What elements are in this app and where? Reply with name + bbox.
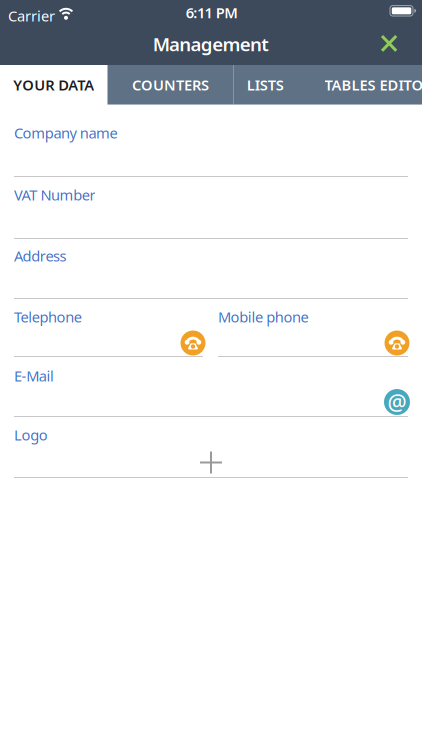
staticText: Mobile phone: [218, 307, 309, 326]
button[interactable]: Call telephone: [180, 330, 205, 355]
staticText: Management: [153, 32, 269, 56]
staticText: Logo: [14, 425, 48, 444]
staticText: Address: [14, 246, 67, 265]
button[interactable]: TABLES EDITOR: [297, 65, 422, 104]
button[interactable]: YOUR DATA: [0, 65, 107, 104]
staticText: VAT Number: [14, 185, 95, 204]
button[interactable]: Add logo: [196, 447, 226, 477]
staticText: @: [387, 388, 406, 416]
button[interactable]: Send e-mail: [384, 389, 410, 415]
staticText: LISTS: [247, 75, 284, 94]
button[interactable]: Close: [374, 28, 404, 58]
staticText: Telephone: [14, 307, 82, 326]
staticText: COUNTERS: [132, 75, 209, 94]
staticText: 6:11 PM: [186, 3, 238, 22]
staticText: TABLES EDITOR: [324, 75, 422, 94]
staticText: Carrier: [8, 6, 55, 25]
staticText: YOUR DATA: [13, 75, 94, 94]
button[interactable]: COUNTERS: [107, 65, 233, 104]
staticText: E-Mail: [14, 366, 54, 385]
button[interactable]: LISTS: [233, 65, 297, 104]
button[interactable]: Call mobile phone: [384, 330, 409, 355]
staticText: Company name: [14, 123, 118, 142]
